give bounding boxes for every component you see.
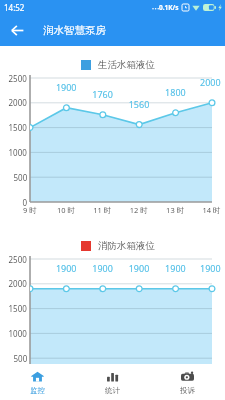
- button[interactable]: 监控: [0, 364, 75, 400]
- staticText: 消防水箱液位: [98, 240, 155, 252]
- staticText: 监控: [30, 386, 45, 395]
- staticText: 0.1K/s: [159, 3, 179, 12]
- staticText: 润水智慧泵房: [43, 24, 106, 37]
- button[interactable]: 统计: [75, 364, 150, 400]
- staticText: 14:52: [4, 2, 25, 13]
- staticText: 统计: [105, 386, 120, 395]
- button[interactable]: 投诉: [150, 364, 225, 400]
- staticText: 投诉: [180, 386, 195, 395]
- button[interactable]: Back: [0, 15, 34, 46]
- staticText: 生活水箱液位: [98, 59, 155, 71]
